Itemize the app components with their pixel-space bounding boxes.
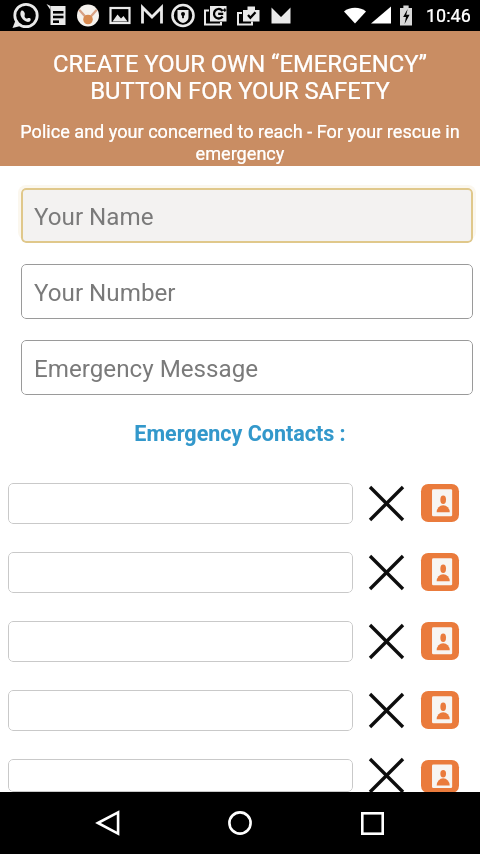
button[interactable] — [8, 483, 353, 524]
button[interactable]: Clear — [366, 690, 407, 731]
button[interactable]: Clear — [366, 621, 407, 662]
staticText: Emergency Contacts : — [0, 421, 480, 446]
button[interactable]: Clear — [366, 759, 407, 792]
button[interactable]: Home — [216, 799, 264, 847]
button[interactable]: Your Name — [21, 188, 473, 243]
staticText: Your Number — [34, 279, 176, 307]
button[interactable] — [8, 552, 353, 593]
staticText: Emergency Message — [34, 355, 259, 383]
button[interactable]: Pick contact — [421, 691, 459, 729]
button[interactable]: Recents — [348, 799, 396, 847]
button[interactable]: Pick contact — [421, 553, 459, 591]
button[interactable] — [8, 690, 353, 731]
button[interactable]: Clear — [366, 552, 407, 593]
button[interactable]: Clear — [366, 483, 407, 524]
button[interactable] — [8, 621, 353, 662]
staticText: Police and your concerned to reach - For… — [10, 121, 470, 164]
button[interactable]: Emergency Message — [21, 340, 473, 395]
button[interactable]: Pick contact — [421, 760, 459, 793]
button[interactable]: Pick contact — [421, 622, 459, 660]
staticText: Your Name — [34, 203, 154, 231]
staticText: CREATE YOUR OWN “EMERGENCY” BUTTON FOR Y… — [12, 50, 468, 105]
button[interactable]: Pick contact — [421, 484, 459, 522]
staticText: 10:46 — [426, 5, 471, 26]
button[interactable] — [8, 759, 353, 792]
button[interactable]: Back — [84, 799, 132, 847]
button[interactable]: Your Number — [21, 264, 473, 319]
